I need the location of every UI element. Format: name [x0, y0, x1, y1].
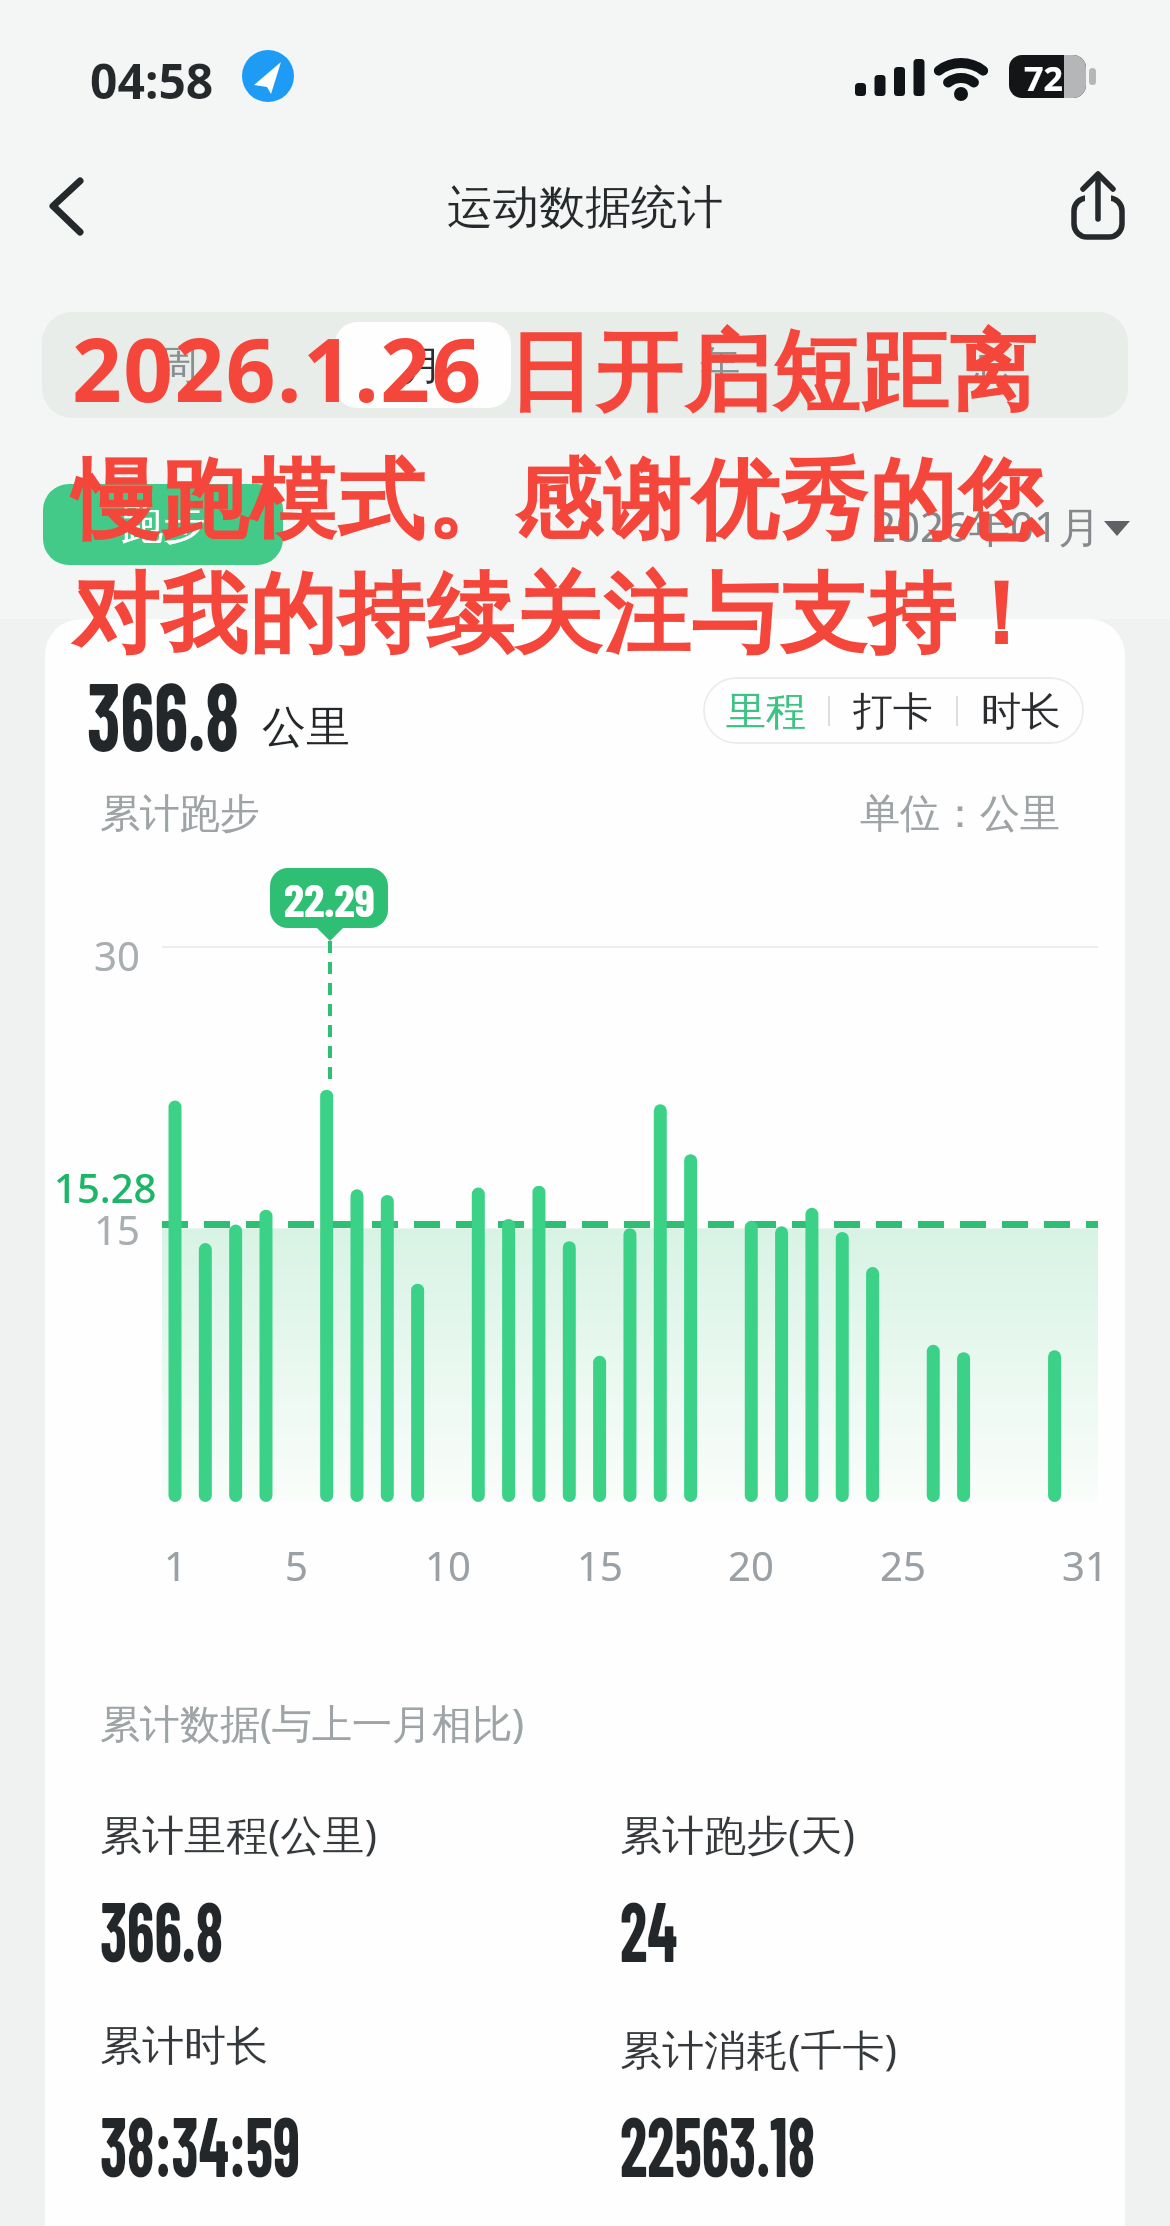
- staticText: 20: [728, 1538, 774, 1592]
- staticText: 累计时长: [100, 2020, 268, 2073]
- staticText: 跑步: [121, 498, 205, 551]
- staticText: 04:58: [90, 48, 214, 113]
- staticText: 累计跑步(天): [620, 1805, 856, 1862]
- button[interactable]: 2026年01月: [860, 495, 1130, 555]
- staticText: 慢跑模式。感谢优秀的您: [72, 446, 1046, 556]
- staticText: 31: [1062, 1538, 1108, 1592]
- staticText: 1: [164, 1538, 187, 1592]
- staticText: 30: [94, 928, 140, 982]
- staticText: 2026.1.26 日开启短距离: [72, 309, 1038, 428]
- staticText: 22563.18: [620, 2093, 815, 2194]
- button[interactable]: [1055, 165, 1145, 255]
- staticText: 72: [1024, 55, 1063, 98]
- staticText: 累计里程(公里): [100, 1805, 378, 1862]
- staticText: 总: [972, 340, 1012, 390]
- staticText: 累计跑步: [100, 788, 260, 838]
- staticText: 公里: [262, 700, 350, 755]
- staticText: 2026年01月: [872, 497, 1101, 554]
- staticText: 累计消耗(千卡): [620, 2020, 898, 2077]
- button[interactable]: 时长: [958, 677, 1084, 744]
- staticText: 累计数据(与上一月相比): [100, 1695, 524, 1750]
- staticText: 366.8: [100, 1878, 224, 1979]
- staticText: 时长: [981, 686, 1061, 736]
- staticText: 10: [425, 1538, 471, 1592]
- button[interactable]: 月: [313, 312, 584, 418]
- staticText: 38:34:59: [100, 2093, 300, 2194]
- button[interactable]: 跑步: [43, 484, 283, 565]
- button[interactable]: 里程: [703, 677, 828, 744]
- staticText: 运动数据统计: [447, 179, 723, 237]
- staticText: 5: [285, 1538, 308, 1592]
- staticText: 25: [880, 1538, 926, 1592]
- staticText: 周: [158, 340, 198, 390]
- staticText: 22.29: [284, 871, 375, 926]
- staticText: 里程: [726, 686, 806, 736]
- button[interactable]: [40, 160, 130, 250]
- button[interactable]: 打卡: [830, 677, 956, 744]
- staticText: 打卡: [853, 686, 933, 736]
- staticText: 年: [700, 340, 740, 390]
- button[interactable]: 周: [42, 312, 313, 418]
- staticText: 单位：公里: [860, 788, 1060, 838]
- staticText: 366.8: [87, 655, 239, 770]
- button[interactable]: 年: [584, 312, 856, 418]
- staticText: 15: [577, 1538, 623, 1592]
- staticText: 15.28: [54, 1160, 157, 1214]
- staticText: 月: [403, 340, 443, 390]
- staticText: 对我的持续关注与支持！: [72, 560, 1046, 670]
- button[interactable]: 总: [856, 312, 1128, 418]
- staticText: 15: [94, 1202, 140, 1256]
- staticText: 24: [620, 1878, 678, 1979]
